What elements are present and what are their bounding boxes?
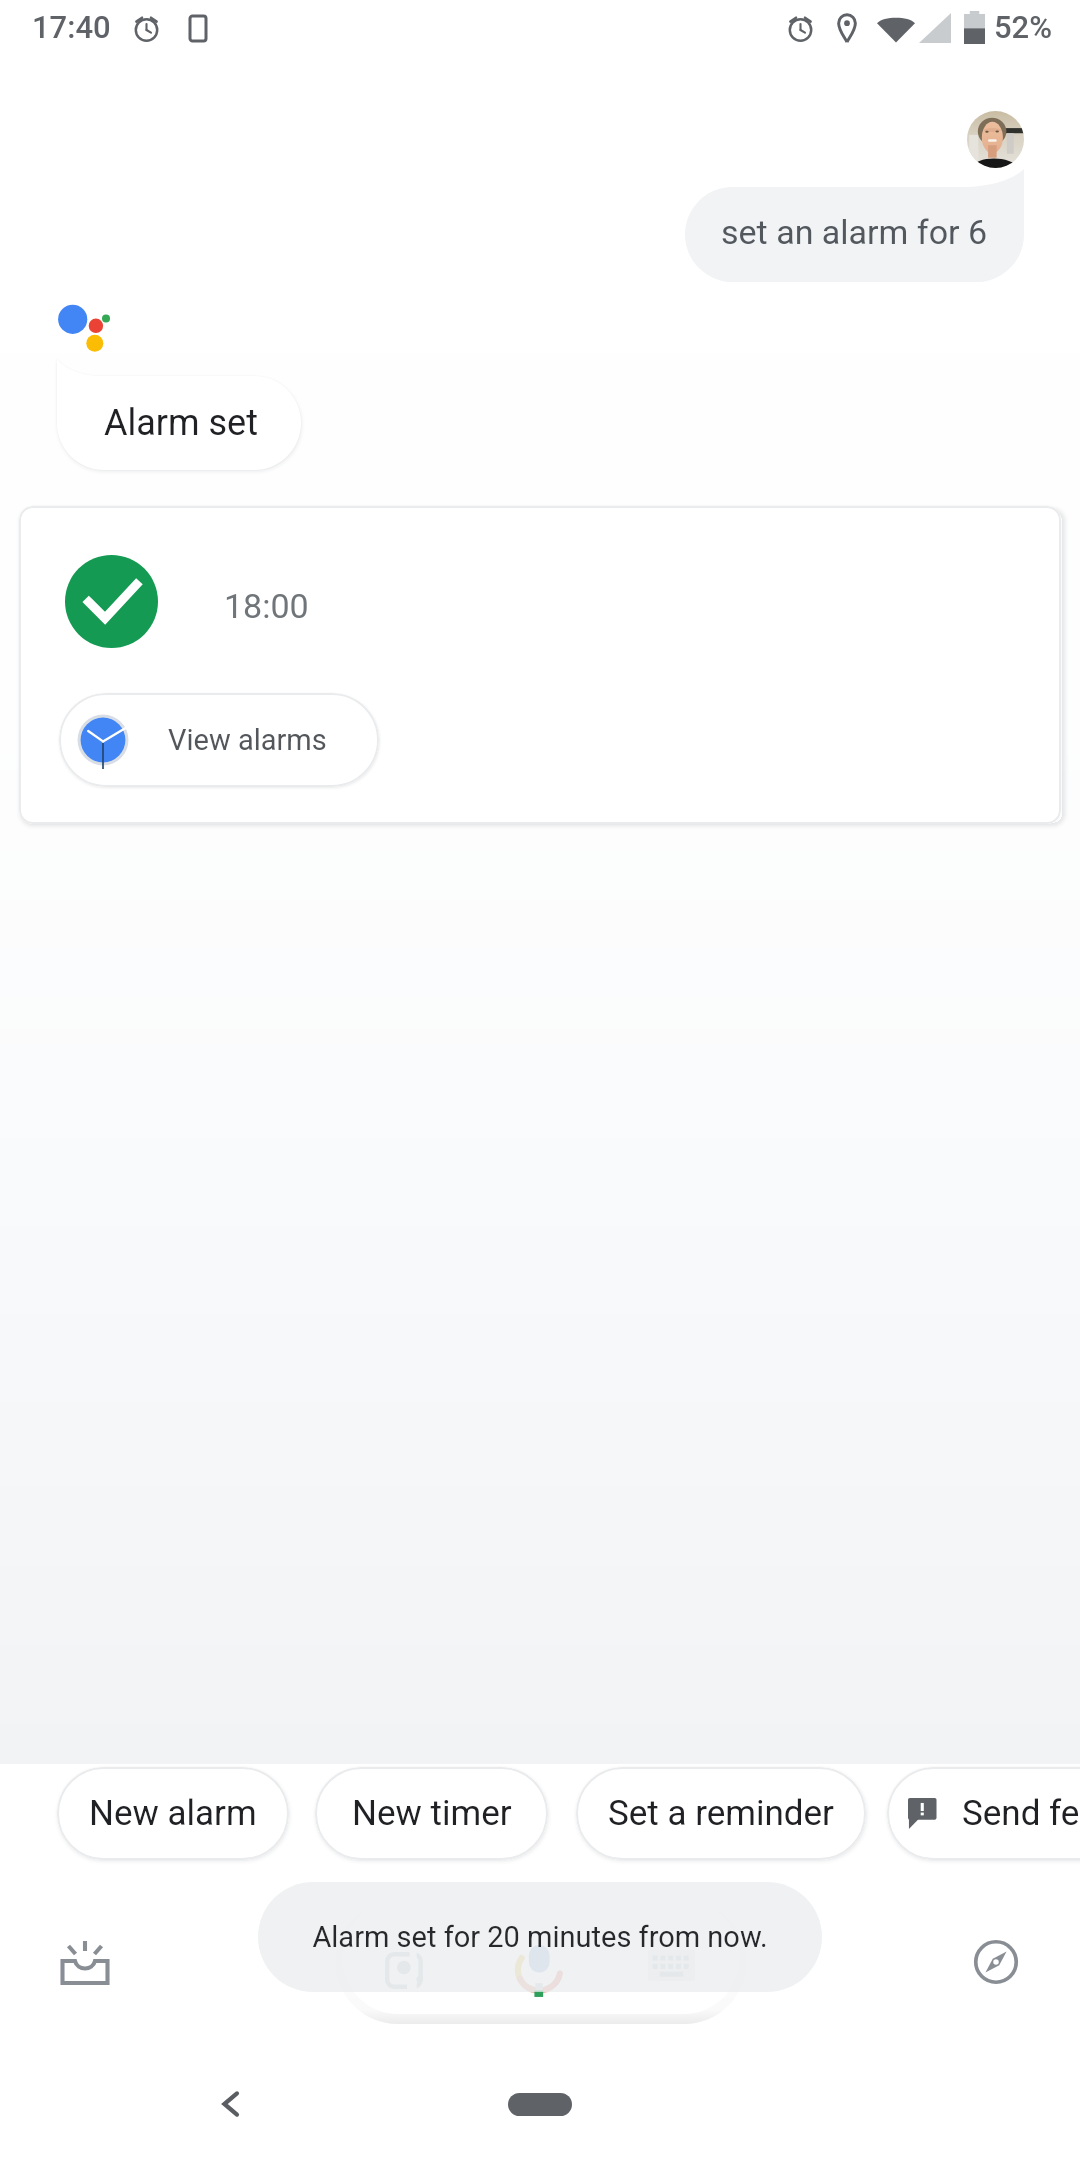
staticText: View alarms	[168, 723, 327, 757]
button[interactable]: Snapshot	[45, 1923, 125, 2003]
button[interactable]: set an alarm for 6	[685, 169, 1024, 282]
button[interactable]: New timer	[315, 1767, 548, 1860]
button[interactable]: Profile	[967, 111, 1024, 168]
button[interactable]: New alarm	[57, 1767, 289, 1860]
staticText: 52%	[994, 9, 1053, 45]
staticText: 18:00	[224, 586, 309, 624]
staticText: Alarm set	[104, 402, 258, 444]
button[interactable]: 18:00	[19, 506, 1061, 824]
button[interactable]: Voice input	[342, 1901, 740, 2014]
staticText: Set a reminder	[608, 1793, 834, 1834]
button[interactable]: View alarms	[59, 693, 379, 787]
button[interactable]: Alarm set	[57, 359, 301, 470]
button[interactable]: Explore	[956, 1922, 1036, 2002]
staticText: set an alarm for 6	[721, 212, 988, 252]
staticText: New alarm	[89, 1793, 257, 1834]
staticText: Alarm set for 20 minutes from now.	[312, 1920, 768, 1954]
staticText: 17:40	[32, 9, 111, 45]
button[interactable]: Set a reminder	[576, 1767, 866, 1860]
button[interactable]: Back	[190, 2064, 270, 2144]
button[interactable]: Send feedback	[887, 1767, 1080, 1860]
staticText: New timer	[352, 1793, 512, 1834]
button[interactable]: Home	[508, 2093, 572, 2116]
staticText: Send feedback	[962, 1793, 1080, 1834]
